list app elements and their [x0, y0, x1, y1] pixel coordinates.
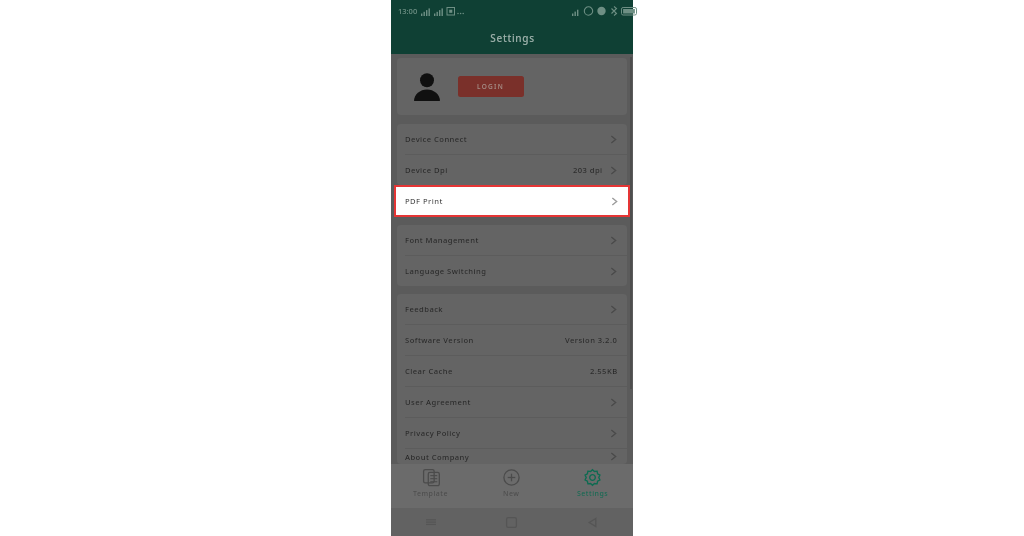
button[interactable]: LOGIN: [397, 58, 627, 115]
staticText: Settings: [577, 489, 609, 499]
staticText: Device Connect: [405, 134, 468, 144]
staticText: 2.55KB: [590, 366, 618, 376]
button[interactable]: LOGIN: [458, 76, 524, 97]
staticText: Version 3.2.0: [565, 335, 618, 345]
button[interactable]: New: [471, 464, 552, 508]
staticText: User Agreement: [405, 397, 471, 407]
button[interactable]: Language Switching: [397, 256, 627, 286]
staticText: Font Management: [405, 235, 479, 245]
staticText: 203 dpi: [573, 165, 603, 175]
staticText: 13:00: [398, 6, 418, 16]
button[interactable]: Privacy Policy: [397, 418, 627, 448]
staticText: Language Switching: [405, 266, 487, 276]
staticText: Template: [413, 489, 449, 499]
staticText: Settings: [490, 31, 535, 45]
staticText: Feedback: [405, 304, 444, 314]
button[interactable]: Template: [391, 464, 471, 508]
button[interactable]: About Company: [397, 449, 627, 464]
button[interactable]: User Agreement: [397, 387, 627, 417]
staticText: Privacy Policy: [405, 428, 461, 438]
button[interactable]: Settings: [552, 464, 633, 508]
staticText: LOGIN: [477, 82, 505, 91]
staticText: Device Dpi: [405, 165, 448, 175]
button[interactable]: Feedback: [397, 294, 627, 324]
staticText: PDF Print: [405, 196, 443, 206]
button[interactable]: PDF Print: [394, 185, 630, 217]
button[interactable]: Device Dpi: [397, 155, 627, 185]
staticText: Clear Cache: [405, 366, 453, 376]
staticText: Software Version: [405, 335, 474, 345]
staticText: About Company: [405, 452, 470, 462]
button[interactable]: Device Connect: [397, 124, 627, 154]
button[interactable]: Software Version: [397, 325, 627, 355]
button[interactable]: Font Management: [397, 225, 627, 255]
button[interactable]: Clear Cache: [397, 356, 627, 386]
staticText: New: [503, 489, 520, 499]
